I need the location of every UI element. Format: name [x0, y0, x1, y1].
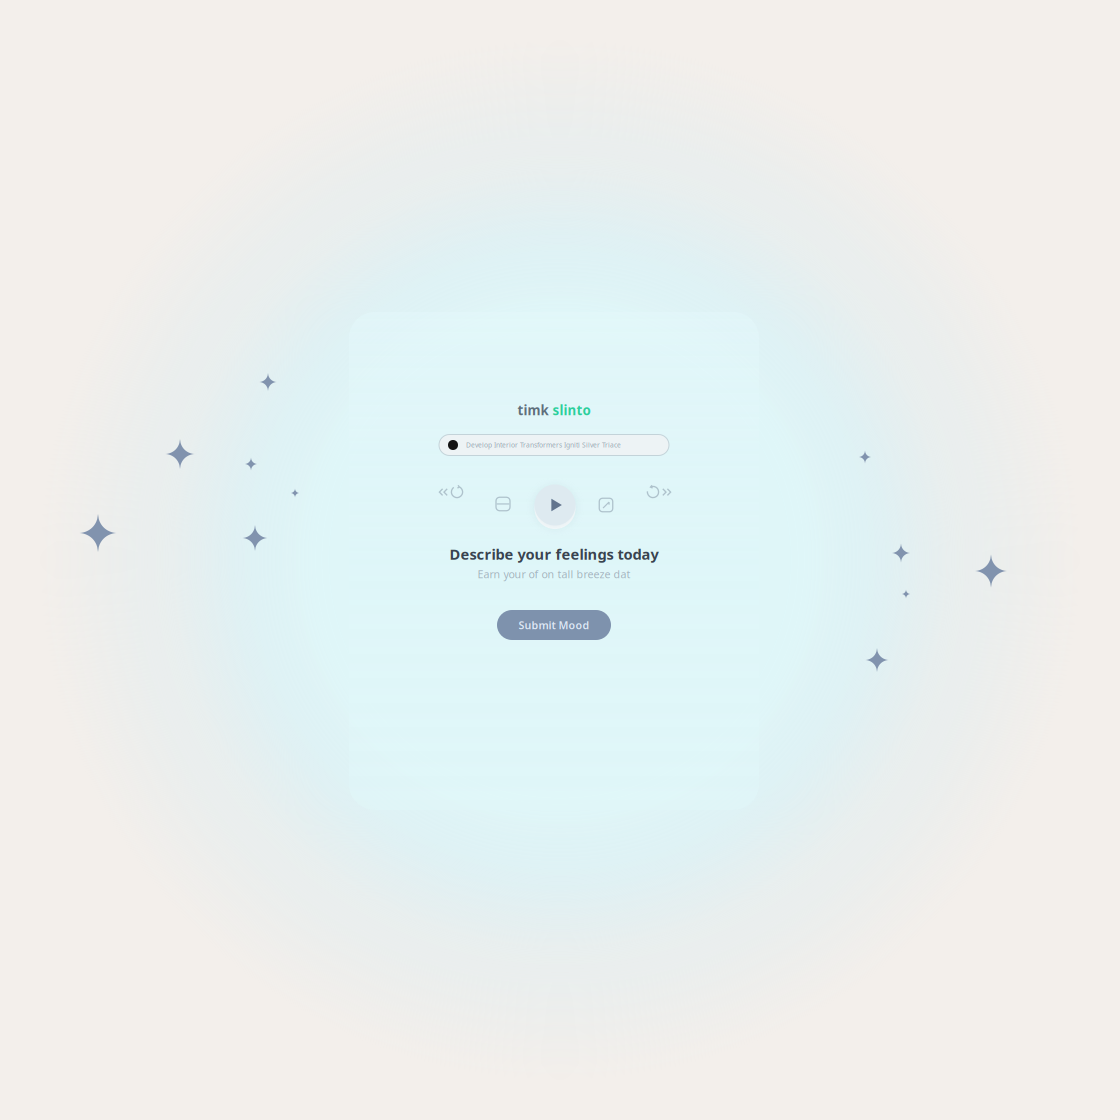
- staticText: slinto: [552, 401, 590, 419]
- staticText: Develop Interior Transformers Igniti Sil…: [466, 441, 621, 449]
- staticText: Submit Mood: [518, 618, 589, 632]
- button[interactable]: Submit Mood: [497, 610, 611, 640]
- button[interactable]: Develop Interior Transformers Igniti Sil…: [439, 434, 669, 455]
- button[interactable]: Next: [593, 492, 619, 518]
- button[interactable]: Skip forward: [642, 479, 676, 505]
- button[interactable]: Previous: [490, 491, 516, 517]
- staticText: Describe your feelings today: [449, 544, 658, 564]
- button[interactable]: Go back: [434, 479, 468, 505]
- staticText: timk: [517, 401, 548, 419]
- staticText: Earn your of on tall breeze dat: [477, 567, 630, 581]
- button[interactable]: Play: [529, 479, 581, 531]
